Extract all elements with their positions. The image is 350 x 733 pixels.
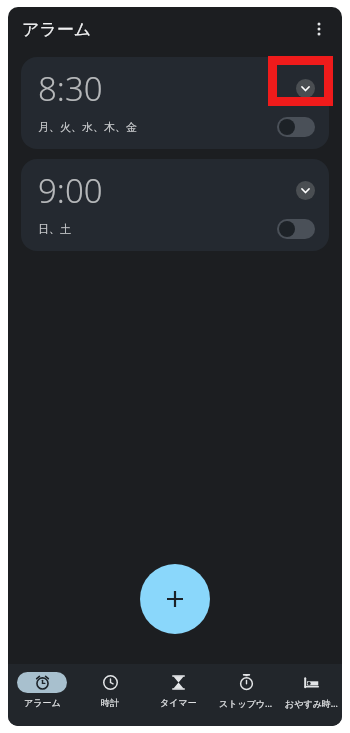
staticText: おやすみ時… [285, 697, 338, 709]
button[interactable]: アラームのオン / オフ [277, 219, 315, 239]
staticText: 8:30 [38, 66, 103, 111]
staticText: ストップウ… [219, 697, 273, 709]
staticText: 時計 [101, 697, 119, 708]
button[interactable]: その他のオプション [304, 14, 334, 44]
staticText: アラーム [22, 19, 92, 40]
button[interactable]: アラーム [8, 664, 76, 726]
button[interactable]: 9:00 [21, 159, 329, 251]
button[interactable]: おやすみ時… [280, 664, 342, 726]
staticText: 月、火、水、木、金 [38, 120, 137, 134]
button[interactable]: 展開 [296, 181, 315, 200]
button[interactable]: 8:30 [21, 57, 329, 149]
staticText: アラーム [24, 697, 61, 708]
staticText: 日、土 [38, 222, 71, 236]
staticText: タイマー [160, 697, 197, 708]
button[interactable]: ストップウ… [212, 664, 280, 726]
button[interactable]: アラームを追加 [140, 564, 210, 634]
button[interactable]: アラームのオン / オフ [277, 117, 315, 137]
button[interactable]: 時計 [76, 664, 144, 726]
button[interactable]: 展開 [296, 79, 315, 98]
staticText: 9:00 [38, 168, 103, 213]
button[interactable]: タイマー [144, 664, 212, 726]
